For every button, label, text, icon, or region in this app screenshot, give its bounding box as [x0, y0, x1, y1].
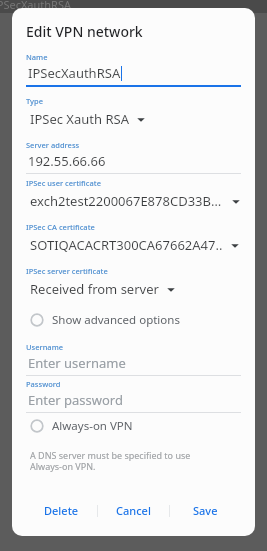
staticText: Name	[26, 52, 48, 62]
staticText: Enter password	[28, 391, 123, 409]
staticText: Show advanced options	[52, 312, 180, 328]
staticText: IPSec Xauth RSA	[30, 110, 129, 128]
button[interactable]: IPSec server certificate	[26, 266, 241, 298]
staticText: SOTIQACACRT300CA67662A47..	[30, 236, 223, 254]
staticText: Delete	[44, 503, 79, 518]
button[interactable]: IPSec user certificate	[26, 178, 241, 210]
button[interactable]: Save	[170, 497, 241, 524]
staticText: IPSecXauthRSA	[0, 0, 72, 12]
staticText: Always-on VPN	[52, 418, 133, 434]
staticText: Received from server	[30, 280, 159, 298]
staticText: Enter username	[28, 354, 126, 372]
staticText: Cancel	[116, 503, 151, 518]
button[interactable]: Cancel	[98, 497, 169, 524]
staticText: Password	[26, 379, 61, 389]
button[interactable]: Password	[26, 379, 241, 413]
staticText: IPSec CA certificate	[26, 222, 95, 232]
button[interactable]: Name	[26, 52, 241, 87]
button[interactable]: Username	[26, 342, 241, 376]
staticText: Type	[26, 96, 43, 106]
staticText: Server address	[26, 140, 80, 150]
button[interactable]: Type	[26, 96, 241, 128]
staticText: 192.55.66.66	[28, 152, 106, 170]
staticText: Save	[193, 503, 218, 518]
staticText: Edit VPN network	[26, 22, 143, 41]
button[interactable]: Server address	[26, 140, 241, 174]
staticText: IPSec user certificate	[26, 178, 101, 188]
staticText: exch2test2200067E878CD33BE..	[30, 192, 224, 210]
button[interactable]: IPSec CA certificate	[26, 222, 241, 254]
button[interactable]: Delete	[26, 497, 97, 524]
staticText: Username	[26, 342, 64, 352]
button[interactable]: Show advanced options	[26, 310, 241, 330]
staticText: IPSecXauthRSA	[28, 64, 121, 82]
button[interactable]: Always-on VPN	[26, 416, 241, 436]
staticText: A DNS server must be specified to use Al…	[30, 449, 191, 473]
staticText: IPSec server certificate	[26, 266, 108, 276]
